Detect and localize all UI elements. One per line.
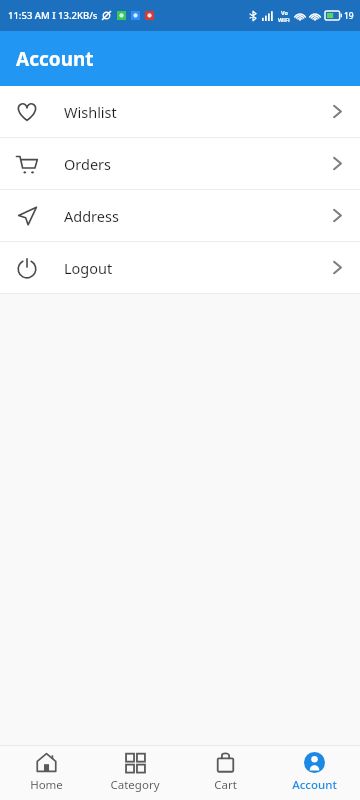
button[interactable]: Orders: [0, 138, 360, 189]
button[interactable]: Category: [92, 746, 178, 799]
button[interactable]: Account: [271, 746, 357, 799]
staticText: Category: [110, 777, 160, 793]
button[interactable]: Address: [0, 190, 360, 241]
staticText: Wishlist: [64, 102, 117, 122]
staticText: Vo: [281, 9, 288, 16]
staticText: 11:53 AM I 13.2KB/s: [8, 9, 98, 22]
staticText: Account: [16, 46, 94, 72]
other: Home: [36, 752, 57, 773]
button[interactable]: Wishlist: [0, 86, 360, 137]
button[interactable]: Logout: [0, 242, 360, 293]
staticText: WiFi: [278, 16, 290, 23]
staticText: Account: [292, 777, 337, 793]
other: Category: [125, 752, 146, 773]
staticText: Home: [30, 777, 63, 793]
other: Cart: [215, 752, 236, 773]
staticText: Cart: [214, 777, 237, 793]
staticText: Logout: [64, 258, 113, 278]
other: Account: [304, 752, 325, 773]
staticText: Address: [64, 206, 119, 226]
button[interactable]: Home: [3, 746, 89, 799]
staticText: Orders: [64, 154, 112, 174]
staticText: 19: [344, 10, 354, 22]
button[interactable]: Cart: [182, 746, 268, 799]
